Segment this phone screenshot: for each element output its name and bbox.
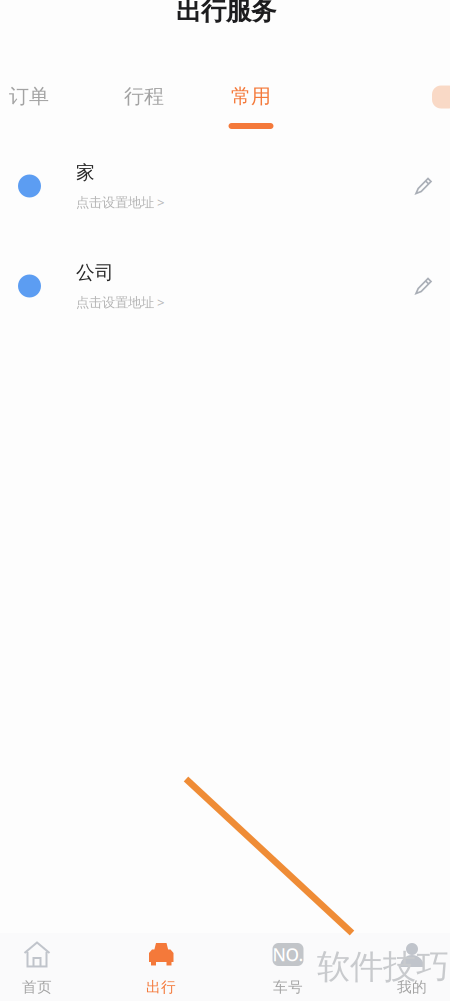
staticText: 家 — [76, 161, 95, 184]
button[interactable]: 家 — [0, 136, 450, 236]
staticText: 软件技巧 — [317, 946, 449, 987]
button[interactable]: 首页 — [0, 934, 93, 1001]
button[interactable]: 出行 — [105, 934, 217, 1001]
staticText: 点击设置地址 > — [76, 293, 165, 311]
button[interactable]: 我的 — [356, 934, 450, 1001]
staticText: 公司 — [76, 261, 114, 284]
button[interactable]: 添加常用地址 — [432, 85, 450, 108]
staticText: 我的 — [397, 978, 427, 996]
staticText: 行程 — [124, 84, 164, 109]
button[interactable]: 常用 — [208, 81, 294, 133]
button[interactable]: 订单 — [0, 81, 72, 133]
staticText: 订单 — [9, 84, 49, 109]
staticText: 首页 — [22, 978, 52, 996]
staticText: 常用 — [231, 84, 271, 109]
staticText: 点击设置地址 > — [76, 193, 165, 211]
staticText: 车号 — [273, 978, 303, 996]
staticText: 出行服务 — [176, 0, 276, 26]
staticText: NO. — [272, 943, 303, 966]
button[interactable]: 行程 — [101, 81, 187, 133]
button[interactable]: 公司 — [0, 236, 450, 336]
staticText: 出行 — [146, 978, 176, 996]
button[interactable]: NO. — [232, 934, 344, 1001]
